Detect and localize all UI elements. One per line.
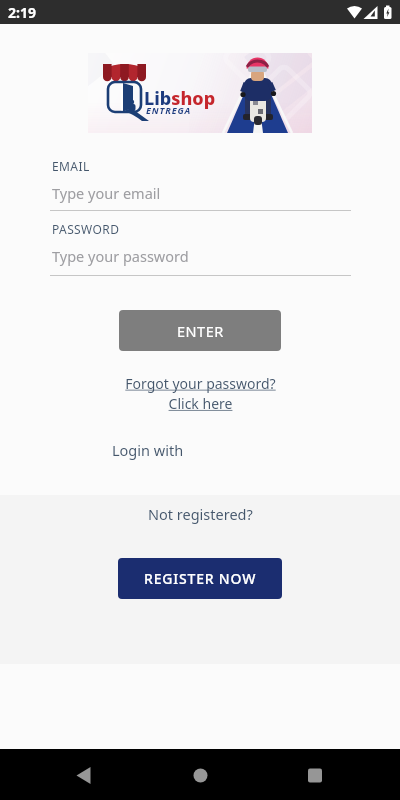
staticText: EMAIL: [52, 158, 90, 174]
button[interactable]: [296, 755, 336, 795]
staticText: Libshop: [144, 86, 216, 111]
button[interactable]: Type your password: [50, 239, 351, 276]
button[interactable]: REGISTER NOW: [118, 558, 282, 599]
staticText: Type your email: [52, 183, 161, 203]
button[interactable]: ENTER: [119, 310, 281, 351]
staticText: REGISTER NOW: [144, 569, 257, 588]
button[interactable]: Type your email: [50, 176, 351, 212]
staticText: ENTER: [177, 321, 224, 341]
staticText: 2:19: [8, 3, 36, 22]
staticText: Forgot your password? Click here: [125, 374, 276, 413]
staticText: PASSWORD: [52, 221, 120, 237]
button[interactable]: [64, 755, 104, 795]
staticText: Login with: [112, 440, 184, 460]
staticText: Not registered?: [148, 504, 253, 524]
button[interactable]: Forgot your password? Click here: [0, 374, 400, 413]
staticText: ENTREGA: [146, 104, 192, 116]
button[interactable]: [180, 755, 220, 795]
staticText: Type your password: [52, 246, 189, 266]
